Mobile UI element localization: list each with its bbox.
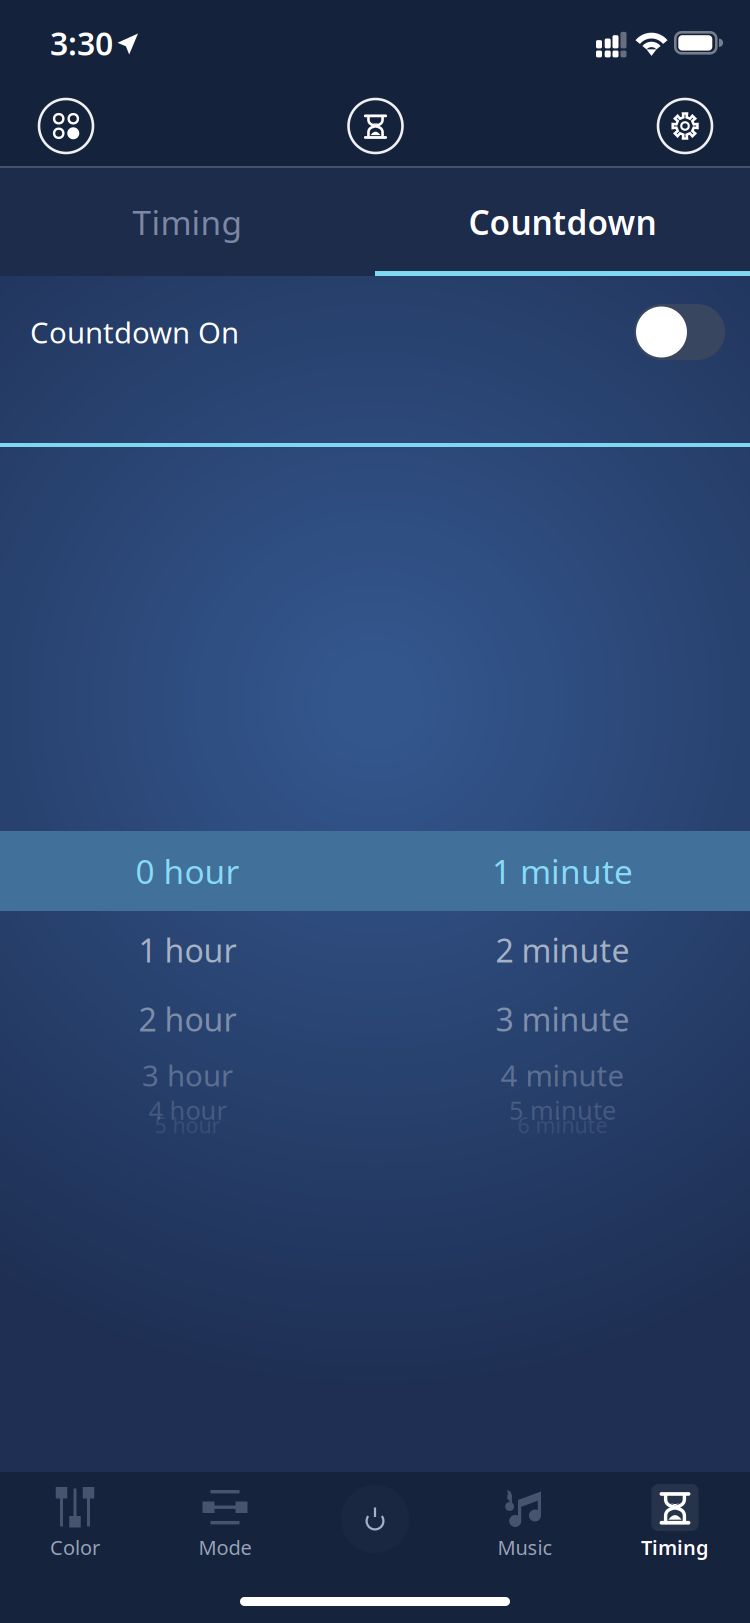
button[interactable]: Settings xyxy=(658,99,712,153)
staticText: 2 hour xyxy=(138,998,236,1040)
staticText: 4 hour xyxy=(148,1093,226,1127)
staticText: Countdown xyxy=(468,200,656,244)
staticText: 1 hour xyxy=(138,929,236,971)
staticText: Music xyxy=(497,1534,552,1561)
staticText: 0 hour xyxy=(135,849,239,893)
staticText: Countdown On xyxy=(30,312,239,351)
staticText: Color xyxy=(50,1534,100,1561)
button[interactable]: Scenes xyxy=(39,99,93,153)
staticText: 3:30 xyxy=(50,22,113,64)
button[interactable]: Countdown On xyxy=(0,276,750,443)
staticText: 1 minute xyxy=(492,849,633,893)
staticText: Timing xyxy=(641,1534,709,1561)
staticText: 2 minute xyxy=(495,929,629,971)
button[interactable]: Countdown xyxy=(375,168,750,276)
staticText: 4 minute xyxy=(500,1055,624,1094)
button[interactable]: Timer xyxy=(348,99,402,153)
staticText: 5 minute xyxy=(509,1093,616,1127)
staticText: 3 hour xyxy=(142,1055,233,1094)
button[interactable]: Timing xyxy=(0,168,375,276)
button[interactable]: Color xyxy=(0,1472,150,1623)
button[interactable]: Mode xyxy=(150,1472,300,1623)
staticText: 3 minute xyxy=(495,998,629,1040)
button[interactable]: Power xyxy=(341,1485,409,1553)
staticText: 6 minute xyxy=(517,1111,607,1139)
button[interactable]: Timing xyxy=(600,1472,750,1623)
staticText: Timing xyxy=(132,200,242,244)
button[interactable]: Music xyxy=(450,1472,600,1623)
staticText: Mode xyxy=(198,1534,251,1561)
staticText: 5 hour xyxy=(154,1111,220,1139)
